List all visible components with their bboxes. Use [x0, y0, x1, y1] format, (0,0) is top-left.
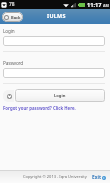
staticText: 78 [9, 1, 15, 8]
staticText: Forgot your password? Click Here. [3, 105, 76, 111]
button[interactable] [3, 68, 105, 78]
button[interactable]: Back [2, 12, 23, 22]
button[interactable] [3, 36, 105, 46]
staticText: Password [3, 60, 24, 66]
staticText: 11:17 [87, 1, 102, 9]
button[interactable]: Login [15, 89, 105, 102]
button[interactable]: Forgot your password? Click Here. [3, 105, 105, 111]
staticText: AM [103, 3, 109, 8]
staticText: Login [54, 93, 66, 99]
button[interactable]: Exit [92, 174, 106, 181]
button[interactable]: Options [3, 90, 14, 102]
staticText: IULMS [47, 12, 66, 19]
staticText: Login [3, 28, 15, 34]
staticText: Exit [92, 174, 101, 181]
staticText: Copyright © 2013 - Iqra University [23, 174, 87, 179]
staticText: Back [11, 15, 21, 20]
